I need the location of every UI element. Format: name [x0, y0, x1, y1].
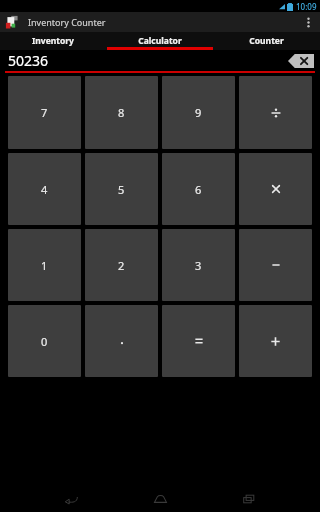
button[interactable]: 8	[85, 76, 158, 149]
button[interactable]	[85, 305, 158, 377]
button[interactable]: 0	[8, 305, 81, 377]
button[interactable]: Multiply	[239, 153, 312, 225]
button[interactable]: Counter	[213, 32, 320, 50]
button[interactable]: 4	[8, 153, 81, 225]
button[interactable]: Inventory	[0, 32, 106, 50]
staticText: 5	[118, 182, 125, 197]
staticText: Inventory Counter	[28, 16, 106, 28]
button[interactable]: Divide	[239, 76, 312, 149]
staticText: 50236	[8, 51, 49, 70]
staticText: 7	[41, 105, 48, 120]
button[interactable]: 2	[85, 229, 158, 301]
staticText: 2	[118, 258, 125, 273]
staticText: 10:09	[296, 1, 317, 12]
staticText: 6	[195, 182, 202, 197]
staticText: 9	[195, 105, 202, 120]
button[interactable]: 3	[162, 229, 235, 301]
button[interactable]: Backspace	[288, 54, 314, 68]
button[interactable]: 9	[162, 76, 235, 149]
staticText: 0	[41, 334, 48, 349]
button[interactable]: More options	[298, 12, 318, 32]
button[interactable]: Home	[142, 488, 178, 510]
staticText: Counter	[249, 35, 284, 47]
button[interactable]: Recent apps	[231, 488, 267, 510]
button[interactable]: 5	[85, 153, 158, 225]
button[interactable]: Add	[239, 305, 312, 377]
button[interactable]: Back	[53, 488, 89, 510]
staticText: 3	[195, 258, 202, 273]
button[interactable]: 7	[8, 76, 81, 149]
staticText: 8	[118, 105, 125, 120]
staticText: Inventory	[32, 35, 74, 47]
staticText: 4	[41, 182, 48, 197]
button[interactable]: 1	[8, 229, 81, 301]
staticText: Calculator	[138, 35, 182, 47]
button[interactable]: Equals	[162, 305, 235, 377]
button[interactable]: 6	[162, 153, 235, 225]
button[interactable]: Calculator	[106, 32, 213, 50]
button[interactable]: Subtract	[239, 229, 312, 301]
staticText: 1	[41, 258, 48, 273]
